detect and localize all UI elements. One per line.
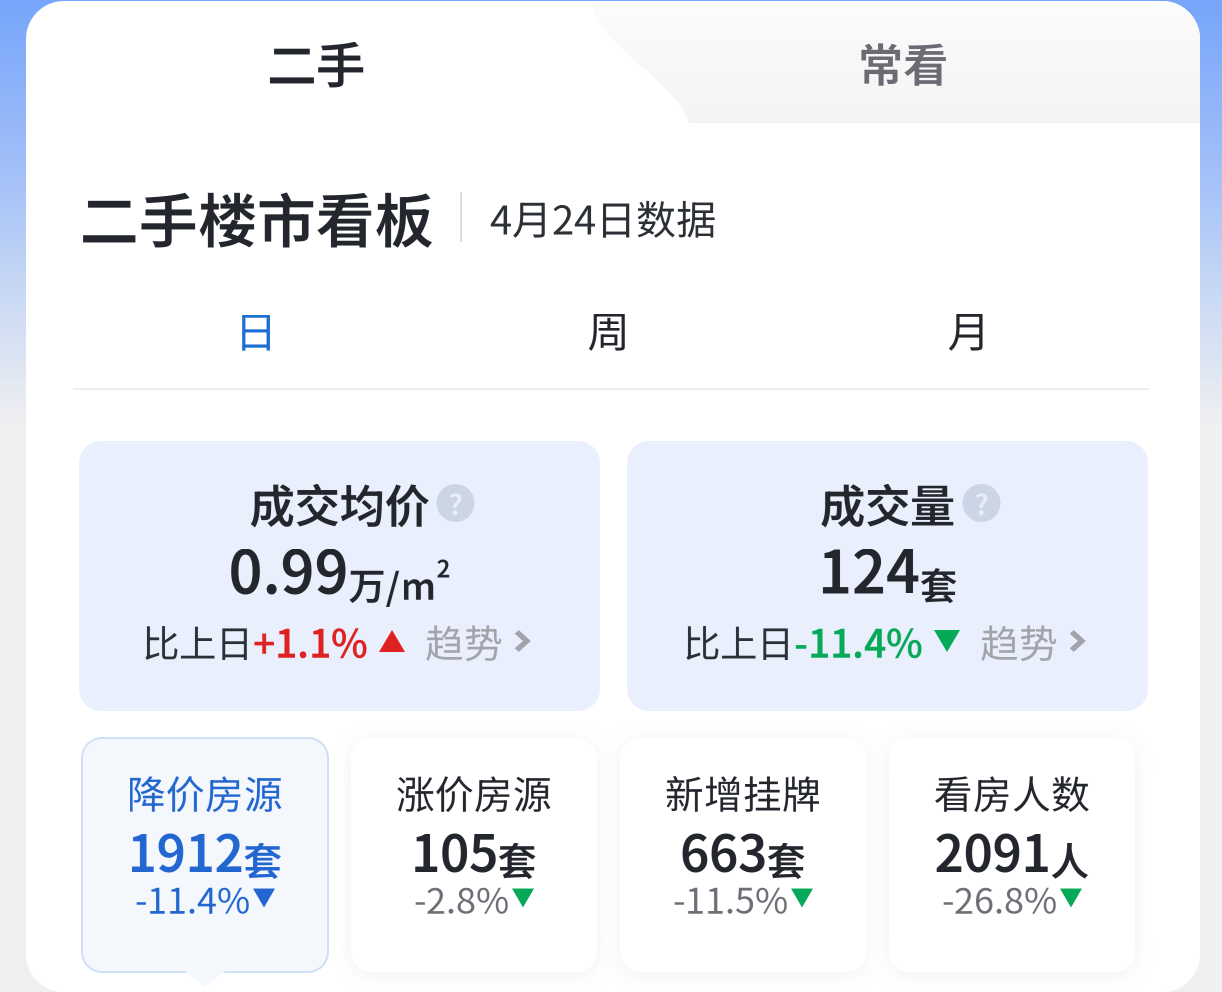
staticText: -26.8% — [942, 872, 1057, 924]
button[interactable]: 常看 — [606, 1, 1200, 123]
staticText: -11.4% — [135, 872, 250, 924]
staticText: 涨价房源 — [396, 764, 552, 820]
staticText: -11.5% — [673, 872, 788, 924]
staticText: 成交均价 — [249, 470, 429, 536]
staticText: 月 — [947, 298, 990, 360]
staticText: 124 — [818, 525, 920, 610]
staticText: 套 — [498, 831, 537, 887]
staticText: +1.1% — [253, 613, 368, 669]
staticText: 常看 — [858, 29, 948, 95]
staticText: 比上日 — [683, 614, 794, 668]
staticText: 0.99 — [228, 525, 348, 610]
button[interactable]: 二手 — [26, 1, 606, 123]
button[interactable]: 成交量 — [627, 441, 1148, 711]
staticText: 比上日 — [142, 614, 253, 668]
button[interactable]: 月 — [793, 286, 1145, 372]
staticText: ? — [974, 482, 988, 524]
staticText: -2.8% — [414, 872, 509, 924]
staticText: 看房人数 — [934, 764, 1090, 820]
staticText: 105 — [411, 813, 498, 887]
staticText: 人 — [1050, 831, 1089, 887]
staticText: 2091 — [934, 813, 1050, 887]
staticText: 4月24日数据 — [490, 188, 716, 246]
button[interactable]: 周 — [433, 286, 785, 372]
staticText: 周 — [587, 298, 630, 360]
staticText: 套 — [243, 831, 282, 887]
staticText: 二手 — [267, 26, 365, 98]
staticText: 新增挂牌 — [665, 764, 821, 820]
staticText: 日 — [234, 298, 277, 360]
button[interactable]: 成交均价 — [79, 441, 600, 711]
button[interactable]: 看房人数 — [889, 738, 1135, 972]
staticText: 趋势 — [425, 613, 503, 669]
staticText: 1912 — [127, 813, 243, 887]
staticText: -11.4% — [794, 613, 923, 669]
button[interactable]: 降价房源 — [82, 738, 328, 972]
button[interactable]: 新增挂牌 — [620, 738, 866, 972]
button[interactable]: 日 — [80, 286, 432, 372]
button[interactable]: 涨价房源 — [351, 738, 597, 972]
staticText: 二手楼市看板 — [80, 174, 434, 259]
staticText: 成交量 — [820, 470, 955, 536]
staticText: 2 — [436, 550, 450, 584]
staticText: 万/m — [348, 556, 436, 610]
staticText: 663 — [680, 813, 767, 887]
staticText: 套 — [920, 556, 957, 610]
staticText: 套 — [767, 831, 806, 887]
staticText: ? — [448, 482, 462, 524]
staticText: 降价房源 — [127, 764, 283, 820]
staticText: 趋势 — [980, 613, 1058, 669]
